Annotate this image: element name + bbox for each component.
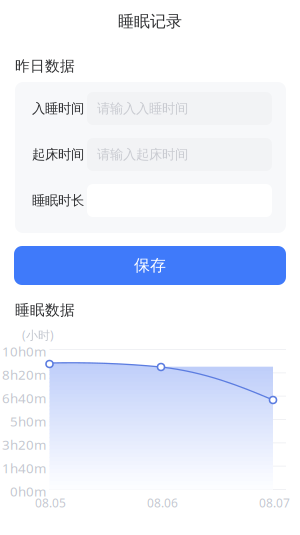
staticText: 3h20m [2,436,46,453]
staticText: 起床时间 [32,146,84,163]
staticText: 08.05 [35,495,66,511]
staticText: 睡眠数据 [15,301,75,319]
staticText: 08.06 [147,495,178,511]
staticText: 睡眠记录 [118,12,182,31]
staticText: 08.07 [259,495,290,511]
staticText: 8h20m [2,366,46,383]
staticText: 昨日数据 [15,57,75,75]
staticText: 10h0m [2,342,46,360]
staticText: 请输入起床时间 [97,146,188,163]
staticText: 5h0m [10,412,46,430]
staticText: 保存 [134,256,166,275]
staticText: 6h40m [2,389,46,407]
staticText: (小时) [22,327,54,343]
button[interactable]: 保存 [14,246,286,285]
staticText: 睡眠时长 [32,192,84,209]
staticText: 请输入入睡时间 [97,100,188,117]
staticText: 入睡时间 [32,100,84,117]
staticText: 0h0m [10,482,46,500]
staticText: 1h40m [2,459,46,477]
